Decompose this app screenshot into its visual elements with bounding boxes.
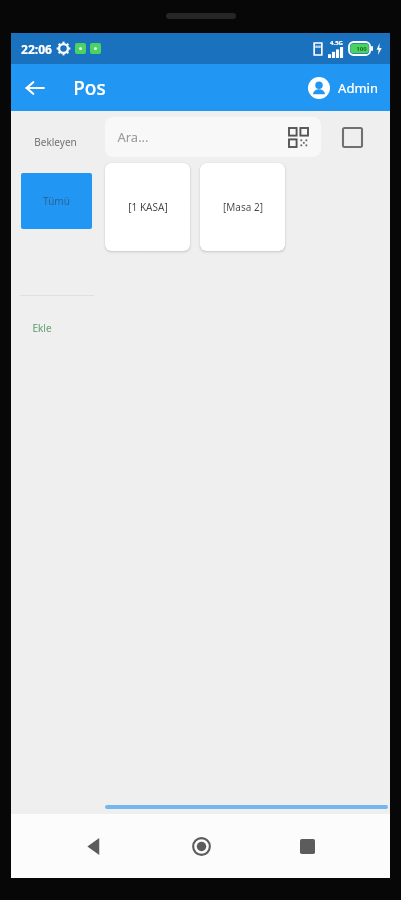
staticText: Admin [338, 79, 378, 97]
button[interactable]: Back [11, 64, 59, 111]
button[interactable]: [1 KASA] [105, 163, 190, 251]
staticText: Ekle [32, 321, 52, 335]
button[interactable]: Select all [337, 122, 367, 152]
button[interactable]: Recents [283, 822, 331, 870]
button[interactable]: Scan QR code [287, 126, 309, 148]
staticText: [1 KASA] [128, 200, 168, 214]
button[interactable]: Tümü [21, 173, 92, 229]
staticText: Ara... [117, 128, 149, 146]
staticText: 22:06 [21, 41, 52, 57]
staticText: Tümü [43, 194, 70, 208]
button[interactable]: [Masa 2] [200, 163, 285, 251]
button[interactable]: Ekle [32, 321, 52, 335]
button[interactable]: Back [70, 822, 118, 870]
button[interactable]: Home [177, 822, 225, 870]
staticText: Pos [73, 75, 106, 101]
staticText: 100 [356, 45, 367, 53]
staticText: [Masa 2] [223, 200, 263, 214]
staticText: 4.5G [330, 39, 343, 47]
staticText: Bekleyen [34, 135, 77, 149]
button[interactable]: Ara... [105, 117, 321, 157]
button[interactable]: Admin [308, 64, 390, 111]
